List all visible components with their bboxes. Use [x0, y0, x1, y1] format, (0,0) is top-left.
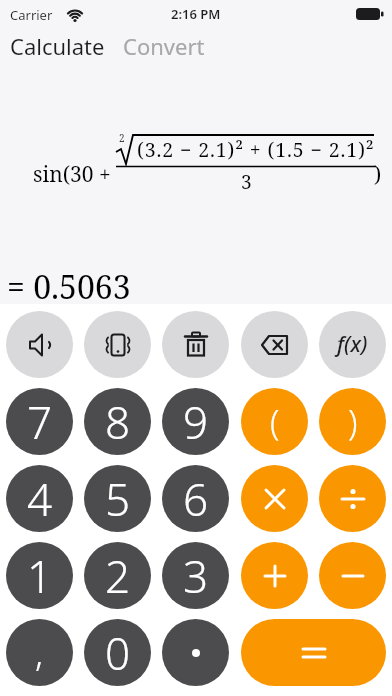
staticText: 7 [27, 392, 53, 452]
button[interactable]: 5 [84, 465, 151, 532]
button[interactable] [162, 311, 229, 378]
button[interactable] [84, 311, 151, 378]
staticText: 9 [183, 392, 209, 452]
button[interactable] [162, 619, 229, 686]
staticText: 4 [27, 469, 53, 529]
staticText: 3 [241, 169, 252, 195]
staticText: 6 [183, 469, 209, 529]
button[interactable]: , [6, 619, 73, 686]
staticText: Calculate [10, 31, 105, 61]
staticText: sin(30 + [33, 160, 111, 189]
staticText: = 0.5063 [7, 265, 131, 309]
staticText: ( [270, 399, 280, 445]
button[interactable] [241, 619, 386, 686]
button[interactable]: 2 [84, 542, 151, 609]
staticText: f(x) [337, 330, 368, 359]
staticText: ) [348, 399, 358, 445]
button[interactable] [241, 311, 308, 378]
staticText: Carrier [10, 6, 53, 24]
button[interactable] [319, 542, 386, 609]
button[interactable]: 0 [84, 619, 151, 686]
button[interactable]: 1 [6, 542, 73, 609]
staticText: 2 [105, 546, 131, 606]
button[interactable] [319, 465, 386, 532]
staticText: 3 [183, 546, 209, 606]
button[interactable]: Calculate [10, 31, 105, 61]
staticText: Convert [123, 31, 205, 61]
staticText: 0 [105, 623, 131, 683]
button[interactable] [6, 311, 73, 378]
staticText: 5 [105, 469, 131, 529]
button[interactable] [241, 465, 308, 532]
button[interactable]: 6 [162, 465, 229, 532]
button[interactable]: ( [241, 388, 308, 455]
button[interactable] [241, 542, 308, 609]
staticText: 1 [27, 546, 53, 606]
button[interactable]: 7 [6, 388, 73, 455]
staticText: 2 [119, 131, 125, 145]
staticText: 2:16 PM [171, 5, 221, 23]
button[interactable]: 3 [162, 542, 229, 609]
staticText: 8 [105, 392, 131, 452]
button[interactable]: f(x) [319, 311, 386, 378]
button[interactable]: 9 [162, 388, 229, 455]
button[interactable]: Convert [123, 31, 205, 61]
button[interactable]: 8 [84, 388, 151, 455]
button[interactable]: 4 [6, 465, 73, 532]
staticText: (3.2 − 2.1)² + (1.5 − 2.1)² [137, 136, 375, 163]
staticText: ) [374, 160, 382, 189]
staticText: , [35, 628, 44, 677]
button[interactable]: ) [319, 388, 386, 455]
